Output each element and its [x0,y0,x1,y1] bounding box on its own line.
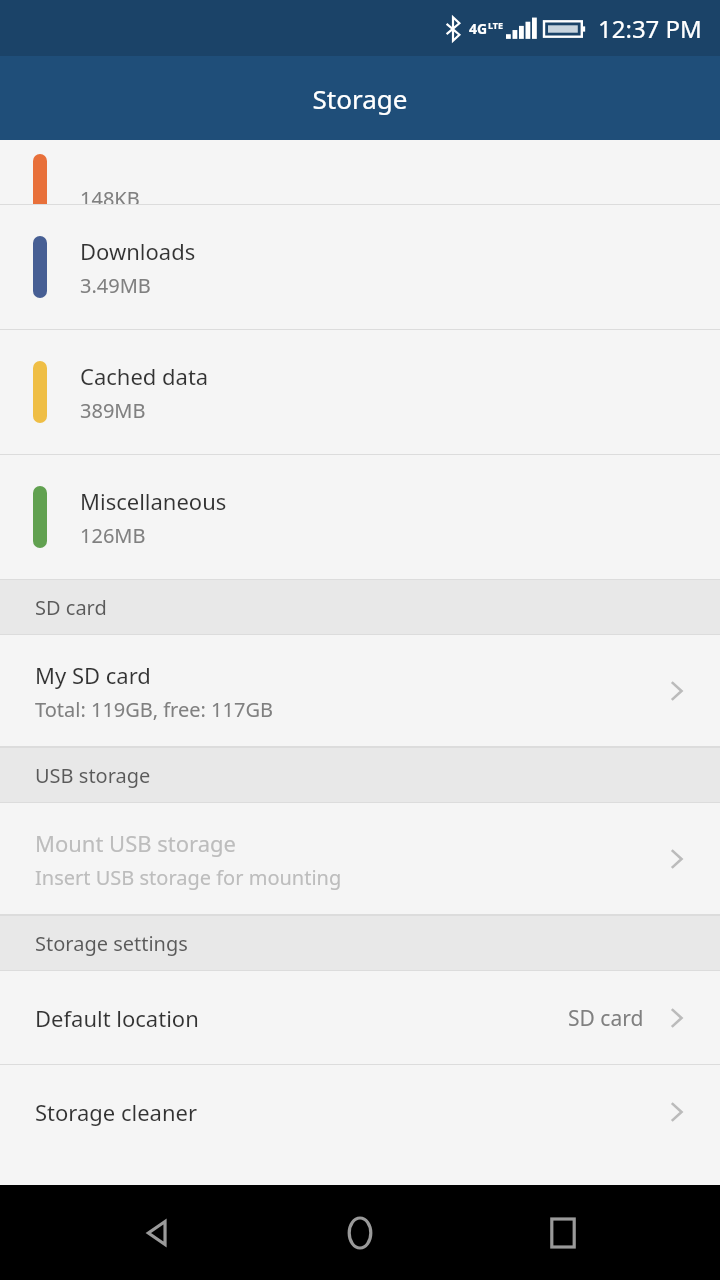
button[interactable]: Downloads [0,205,720,329]
staticText: SD card [35,594,107,621]
button[interactable]: Default location [0,971,720,1065]
staticText: 389MB [80,397,146,424]
staticText: 4G [469,19,488,38]
button[interactable]: Home [315,1188,405,1278]
staticText: 3.49MB [80,272,151,299]
staticText: LTE [488,19,504,31]
button[interactable]: Miscellaneous [0,455,720,579]
button[interactable]: 148KB [0,140,720,204]
staticText: 126MB [80,522,146,549]
button[interactable]: My SD card [0,635,720,747]
staticText: Storage cleaner [35,1097,198,1127]
staticText: Total: 119GB, free: 117GB [35,696,273,723]
button[interactable]: Back [113,1188,203,1278]
staticText: Downloads [80,236,196,266]
staticText: Storage settings [35,930,188,957]
staticText: Storage [0,81,720,116]
staticText: USB storage [35,762,151,789]
staticText: 12:37 PM [598,12,702,45]
staticText: My SD card [35,660,151,690]
staticText: 148KB [80,185,140,212]
button[interactable]: Cached data [0,330,720,454]
button[interactable]: Mount USB storage [0,803,720,915]
staticText: Cached data [80,361,209,391]
button[interactable]: Recent apps [518,1188,608,1278]
staticText: Insert USB storage for mounting [35,864,342,891]
staticText: Mount USB storage [35,828,237,858]
staticText: Miscellaneous [80,486,227,516]
staticText: Default location [35,1003,199,1033]
button[interactable]: Storage cleaner [0,1065,720,1159]
staticText: SD card [568,1004,644,1033]
